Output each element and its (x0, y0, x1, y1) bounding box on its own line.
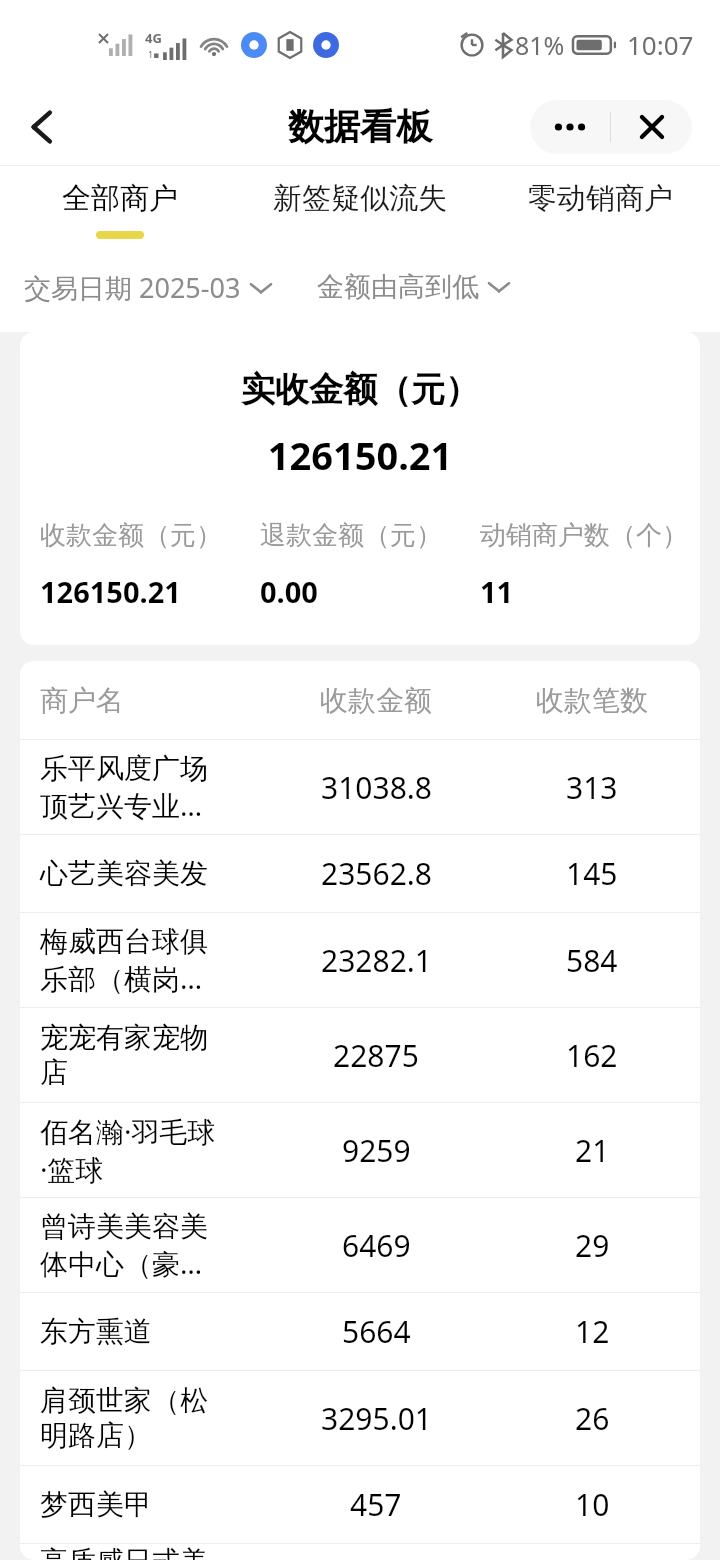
staticText: 收款金额 (320, 683, 432, 718)
staticText: 5664 (342, 1311, 411, 1352)
button[interactable]: More options (530, 100, 610, 154)
staticText: 收款金额（元） (40, 519, 222, 552)
button[interactable]: 东方熏道 (20, 1293, 700, 1370)
staticText: 31038.8 (321, 767, 432, 808)
staticText: 全部商户 (62, 180, 178, 217)
button[interactable]: 零动销商户 (480, 166, 720, 258)
staticText: 梅威西台球俱 (40, 924, 208, 959)
staticText: 实收金额（元） (20, 368, 700, 411)
staticText: 体中心（豪… (40, 1244, 203, 1282)
staticText: 零动销商户 (528, 180, 673, 217)
staticText: 梦西美甲 (40, 1487, 152, 1522)
staticText: 1▪ (148, 48, 160, 60)
staticText: 22875 (333, 1035, 419, 1076)
staticText: 12 (575, 1311, 610, 1352)
staticText: 10 (575, 1484, 610, 1525)
button[interactable]: 宠宠有家宠物 (20, 1008, 700, 1102)
staticText: 9259 (342, 1130, 411, 1171)
staticText: 东方熏道 (40, 1314, 152, 1349)
staticText: 584 (566, 940, 618, 981)
button[interactable]: 金额由高到低 (317, 266, 509, 308)
button[interactable]: 全部商户 (0, 166, 240, 258)
staticText: 退款金额（元） (260, 519, 442, 552)
staticText: 126150.21 (20, 429, 700, 481)
staticText: 145 (566, 853, 618, 894)
button[interactable]: 曾诗美美容美 (20, 1198, 700, 1292)
staticText: 交易日期 2025-03 (24, 269, 241, 306)
staticText: 457 (350, 1484, 402, 1525)
staticText: 数据看板 (288, 104, 432, 149)
button[interactable]: 新签疑似流失 (240, 166, 480, 258)
staticText: 10:07 (627, 27, 694, 62)
staticText: 23562.8 (321, 853, 432, 894)
staticText: 21 (575, 1130, 610, 1171)
staticText: 曾诗美美容美 (40, 1209, 208, 1244)
staticText: 顶艺兴专业… (40, 786, 203, 824)
button[interactable]: 乐平风度广场 (20, 740, 700, 834)
staticText: 乐平风度广场 (40, 751, 208, 786)
button[interactable]: Back (0, 88, 84, 165)
button[interactable]: 心艺美容美发 (20, 835, 700, 912)
staticText: 心艺美容美发 (40, 856, 208, 891)
staticText: 126150.21 (40, 572, 181, 611)
staticText: 商户名 (40, 683, 124, 718)
staticText: 313 (566, 767, 618, 808)
staticText: 宠宠有家宠物 (40, 1020, 208, 1055)
staticText: 4G (145, 29, 162, 47)
staticText: 新签疑似流失 (273, 180, 447, 217)
staticText: 29 (575, 1225, 610, 1266)
staticText: 3295.01 (321, 1398, 432, 1439)
staticText: 店 (40, 1055, 68, 1090)
staticText: 11 (480, 572, 514, 611)
button[interactable]: 实收金额（元） (20, 332, 700, 645)
staticText: 23282.1 (321, 940, 432, 981)
staticText: 肩颈世家（松 (40, 1383, 208, 1418)
button[interactable]: 交易日期 2025-03 (24, 265, 271, 310)
staticText: ·篮球 (40, 1150, 104, 1188)
button[interactable]: 肩颈世家（松 (20, 1371, 700, 1465)
button[interactable]: Close (611, 100, 692, 154)
button[interactable]: 高质感日式美 (20, 1544, 700, 1560)
staticText: 明路店） (40, 1418, 152, 1453)
button[interactable]: 梦西美甲 (20, 1466, 700, 1543)
staticText: 26 (575, 1398, 610, 1439)
staticText: 高质感日式美 (40, 1544, 208, 1560)
staticText: 佰名瀚·羽毛球 (40, 1112, 216, 1150)
button[interactable]: 梅威西台球俱 (20, 913, 700, 1007)
staticText: 6469 (342, 1225, 411, 1266)
staticText: 162 (566, 1035, 618, 1076)
staticText: 金额由高到低 (317, 270, 479, 304)
staticText: 81% (515, 28, 565, 62)
staticText: 乐部（横岗… (40, 959, 203, 997)
staticText: 动销商户数（个） (480, 519, 688, 552)
staticText: 收款笔数 (536, 683, 648, 718)
staticText: 0.00 (260, 572, 318, 611)
button[interactable]: 佰名瀚·羽毛球 (20, 1103, 700, 1197)
